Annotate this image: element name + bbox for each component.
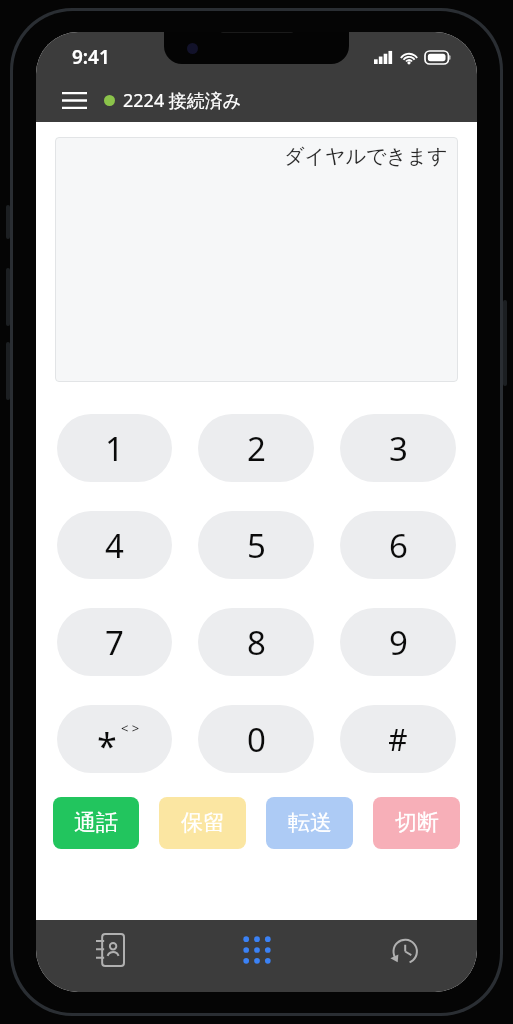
staticText: < > (121, 719, 140, 737)
staticText: 2 (247, 426, 266, 471)
staticText: 0 (247, 717, 266, 762)
button[interactable]: 1 (57, 414, 172, 482)
button[interactable]: # (340, 705, 456, 773)
staticText: # (388, 719, 408, 760)
staticText: 9 (389, 620, 408, 665)
staticText: 保留 (181, 809, 225, 837)
staticText: 9:41 (72, 44, 110, 70)
staticText: 4 (105, 523, 124, 568)
staticText: 7 (105, 620, 124, 665)
button[interactable]: Menu (52, 78, 96, 122)
staticText: 2224 接続済み (123, 88, 242, 113)
button[interactable]: 保留 (159, 797, 246, 849)
button[interactable]: 切断 (373, 797, 460, 849)
button[interactable]: Keypad (183, 920, 330, 980)
staticText: 転送 (288, 809, 332, 837)
button[interactable]: History (330, 920, 477, 980)
staticText: 切断 (395, 809, 439, 837)
staticText: 6 (389, 523, 408, 568)
button[interactable]: Contacts (36, 920, 183, 980)
button[interactable]: 3 (340, 414, 456, 482)
button[interactable]: 7 (57, 608, 172, 676)
staticText: 5 (247, 523, 266, 568)
button[interactable]: 2 (198, 414, 314, 482)
button[interactable]: 9 (340, 608, 456, 676)
button[interactable]: ダイヤルできます (55, 137, 458, 382)
button[interactable]: 0 (198, 705, 314, 773)
button[interactable]: 5 (198, 511, 314, 579)
button[interactable]: * (57, 705, 172, 773)
button[interactable]: 転送 (266, 797, 353, 849)
button[interactable]: 8 (198, 608, 314, 676)
staticText: 3 (389, 426, 408, 471)
staticText: 8 (247, 620, 266, 665)
staticText: * (97, 721, 117, 770)
staticText: ダイヤルできます (284, 144, 448, 169)
staticText: 通話 (74, 809, 118, 837)
button[interactable]: 6 (340, 511, 456, 579)
button[interactable]: 4 (57, 511, 172, 579)
button[interactable]: 通話 (53, 797, 139, 849)
staticText: 1 (105, 426, 124, 471)
